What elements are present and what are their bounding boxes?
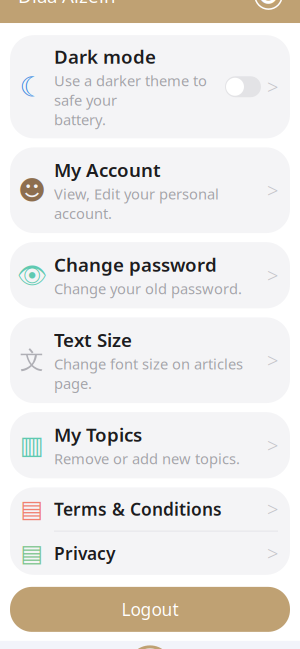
- staticText: ☻: [18, 175, 46, 205]
- staticText: 文: [20, 345, 44, 375]
- staticText: >: [267, 347, 278, 374]
- staticText: ▤: [20, 540, 43, 567]
- button[interactable]: 文: [10, 317, 290, 403]
- staticText: >: [267, 432, 278, 459]
- staticText: View, Edit your personal account.: [54, 184, 219, 223]
- staticText: ▥: [20, 431, 44, 460]
- staticText: My Account: [54, 157, 161, 182]
- button[interactable]: Home: [127, 645, 173, 649]
- button[interactable]: ▥: [10, 412, 290, 478]
- staticText: Remove or add new topics.: [54, 449, 240, 468]
- staticText: Logout: [121, 598, 178, 621]
- staticText: >: [267, 73, 278, 100]
- button[interactable]: Logout: [10, 587, 290, 632]
- staticText: Change password: [54, 252, 217, 277]
- button[interactable]: Profile: [255, 0, 282, 9]
- staticText: Diaa Alzein: [18, 0, 116, 8]
- staticText: >: [267, 540, 278, 567]
- staticText: Terms & Conditions: [54, 497, 222, 520]
- staticText: ☾: [19, 71, 44, 103]
- staticText: Text Size: [54, 327, 132, 352]
- staticText: ▤: [20, 495, 43, 523]
- staticText: >: [267, 177, 278, 204]
- button[interactable]: ▤: [10, 532, 290, 575]
- staticText: Privacy: [54, 542, 115, 565]
- staticText: >: [267, 496, 278, 522]
- staticText: 👁: [17, 261, 47, 289]
- staticText: Use a darker theme to safe your battery.: [54, 71, 207, 129]
- staticText: Change your old password.: [54, 279, 242, 298]
- button[interactable]: ☻: [10, 147, 290, 233]
- staticText: >: [267, 262, 278, 289]
- button[interactable]: 👁: [10, 242, 290, 308]
- staticText: Change font size on articles page.: [54, 354, 243, 393]
- button[interactable]: ☾: [10, 35, 290, 138]
- staticText: My Topics: [54, 422, 142, 447]
- button[interactable]: ▤: [10, 487, 290, 531]
- staticText: ☻: [258, 0, 279, 7]
- staticText: Dark mode: [54, 44, 156, 69]
